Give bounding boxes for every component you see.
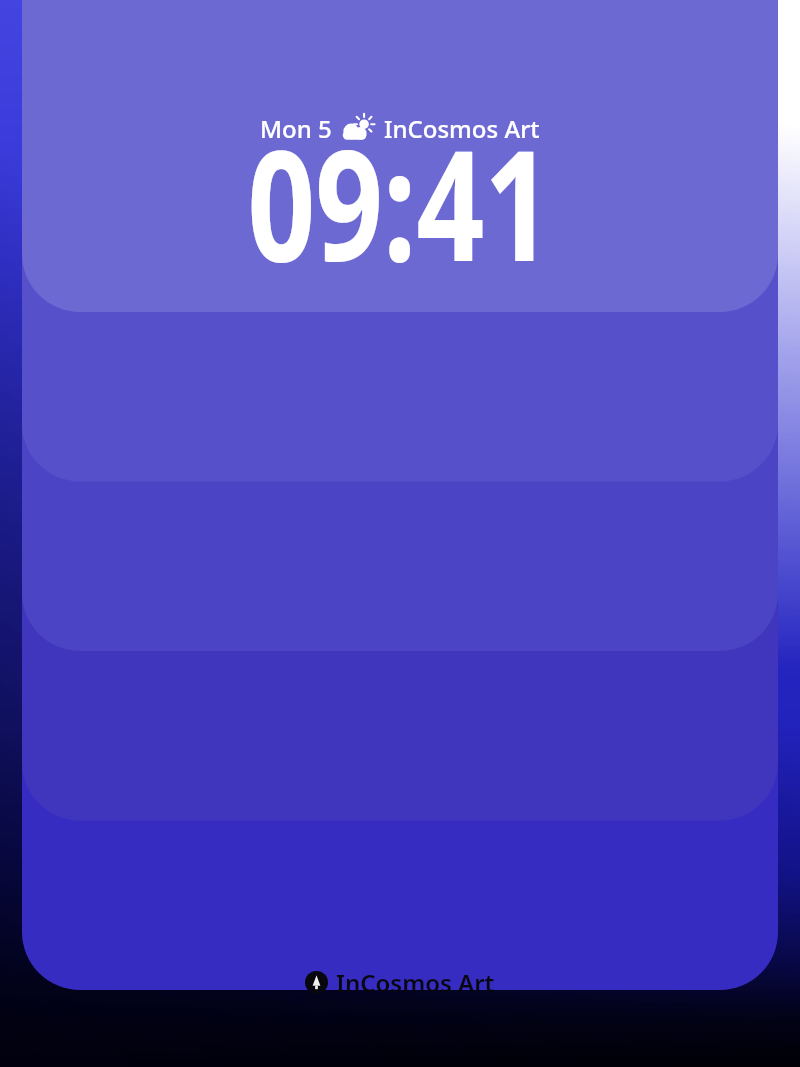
staticText: InCosmos Art bbox=[336, 966, 495, 999]
staticText: InCosmos Art bbox=[384, 112, 540, 145]
staticText: 09:41 bbox=[247, 98, 552, 306]
staticText: Mon 5 bbox=[260, 112, 332, 145]
button[interactable]: InCosmos Art bbox=[305, 966, 495, 999]
